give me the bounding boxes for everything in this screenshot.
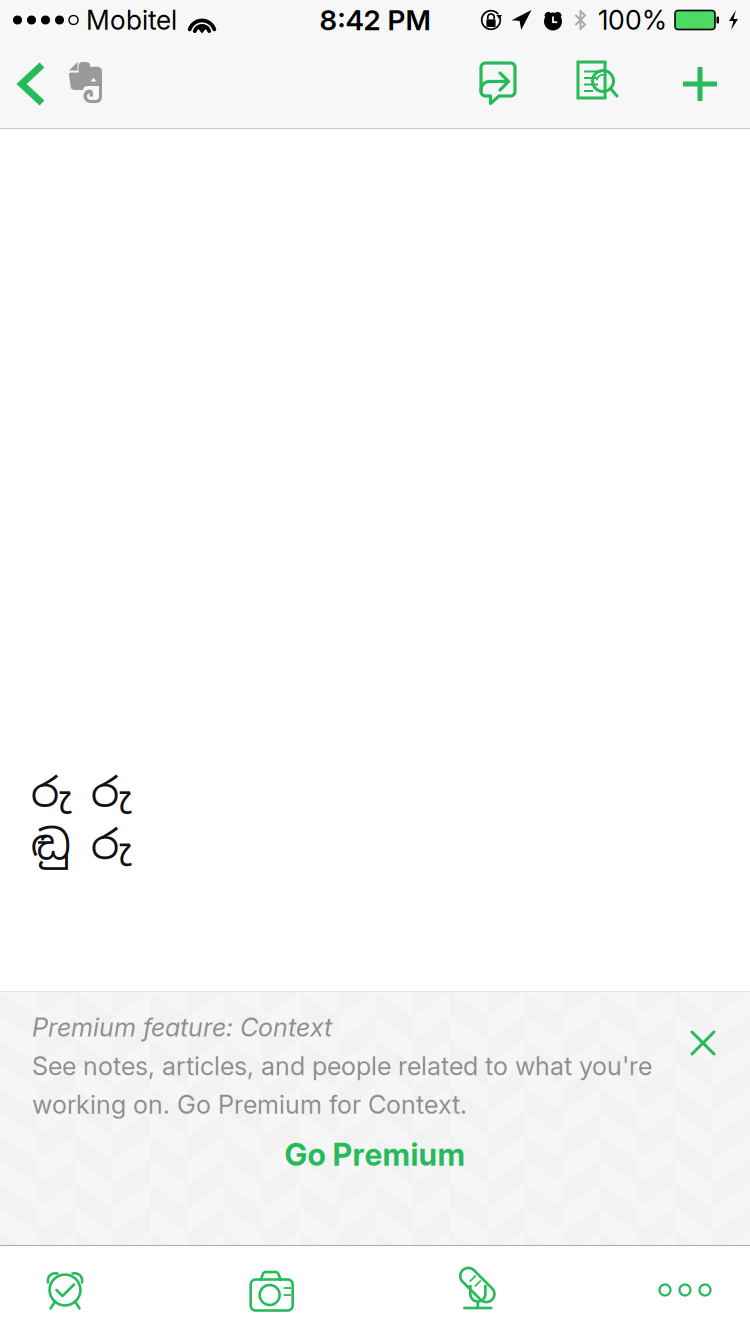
- button[interactable]: Audio: [413, 1246, 543, 1334]
- staticText: working on. Go Premium for Context.: [32, 1089, 467, 1120]
- staticText: Go Premium: [284, 1136, 465, 1173]
- staticText: Premium feature: Context: [32, 1012, 332, 1043]
- button[interactable]: Reminder: [0, 1246, 130, 1334]
- button[interactable]: More: [620, 1246, 750, 1334]
- staticText: 8:42 PM: [319, 3, 430, 37]
- staticText: රු රු: [31, 767, 131, 819]
- button[interactable]: Context: [548, 40, 650, 128]
- button[interactable]: New note: [650, 40, 750, 128]
- button[interactable]: Share: [448, 40, 548, 128]
- button[interactable]: Go Premium: [0, 1120, 750, 1189]
- button[interactable]: Camera: [207, 1246, 337, 1334]
- staticText: Mobitel: [86, 4, 177, 36]
- button[interactable]: Back: [0, 40, 119, 128]
- button[interactable]: Close: [672, 1012, 734, 1074]
- staticText: 100%: [598, 4, 667, 36]
- staticText: See notes, articles, and people related …: [32, 1051, 652, 1081]
- staticText: ඬු රු: [31, 819, 131, 871]
